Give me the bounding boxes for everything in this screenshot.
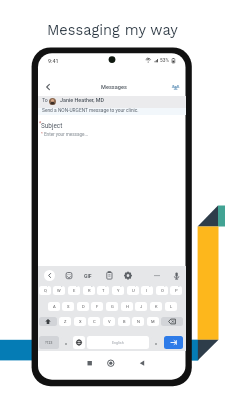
button[interactable]: Close keyboard toolbar: [44, 270, 55, 281]
button[interactable]: D: [77, 302, 89, 311]
staticText: E: [73, 288, 76, 293]
button[interactable]: 4: [83, 286, 95, 295]
staticText: D: [82, 304, 85, 309]
staticText: *: [39, 120, 42, 126]
staticText: 4: [91, 286, 93, 288]
staticText: 9: [164, 286, 166, 288]
staticText: F: [96, 304, 99, 309]
button[interactable]: GIF: [83, 271, 93, 281]
button[interactable]: L: [165, 302, 177, 311]
button[interactable]: Settings: [123, 271, 133, 281]
button[interactable]: J: [135, 302, 147, 311]
staticText: A: [53, 304, 56, 309]
button[interactable]: Voice input: [172, 271, 182, 281]
button[interactable]: H: [121, 302, 133, 311]
staticText: Enter your message...: [44, 132, 89, 137]
staticText: W: [57, 288, 61, 293]
staticText: 1: [47, 286, 49, 288]
button[interactable]: A: [48, 302, 60, 311]
staticText: 53%: [160, 58, 169, 64]
button[interactable]: 8: [141, 286, 153, 295]
staticText: 6: [120, 286, 122, 288]
button[interactable]: backspace: [161, 317, 183, 326]
staticText: U: [132, 288, 135, 293]
staticText: L: [170, 304, 173, 309]
button[interactable]: Back: [136, 357, 148, 369]
button[interactable]: English: [87, 336, 149, 349]
button[interactable]: num: [39, 336, 59, 349]
button[interactable]: B: [118, 317, 130, 326]
staticText: C: [93, 319, 96, 324]
staticText: Z: [64, 319, 67, 324]
staticText: R: [88, 288, 91, 293]
button[interactable]: More: [152, 271, 162, 281]
staticText: *: [41, 131, 43, 136]
staticText: G: [111, 304, 114, 309]
button[interactable]: G: [106, 302, 118, 311]
button[interactable]: Send: [164, 336, 183, 349]
button[interactable]: M: [147, 317, 159, 326]
button[interactable]: Recents: [84, 357, 96, 369]
staticText: X: [79, 319, 82, 324]
button[interactable]: dot: [151, 336, 161, 349]
button[interactable]: X: [74, 317, 86, 326]
button[interactable]: 6: [112, 286, 124, 295]
button[interactable]: 5: [97, 286, 109, 295]
button[interactable]: V: [103, 317, 115, 326]
staticText: M: [151, 319, 155, 324]
staticText: 2: [61, 286, 63, 288]
staticText: Y: [117, 288, 120, 293]
button[interactable]: 9: [156, 286, 168, 295]
staticText: K: [155, 304, 158, 309]
button[interactable]: shift: [39, 317, 57, 326]
staticText: Send a NON-URGENT message to your clinic…: [42, 108, 139, 114]
button[interactable]: F: [91, 302, 103, 311]
button[interactable]: [38, 96, 186, 108]
staticText: H: [126, 304, 129, 309]
staticText: Subject: [41, 122, 63, 130]
button[interactable]: Z: [59, 317, 71, 326]
button[interactable]: Clipboard: [104, 271, 114, 281]
staticText: S: [67, 304, 70, 309]
button[interactable]: Back: [39, 80, 57, 94]
staticText: N: [137, 319, 140, 324]
button[interactable]: Contacts: [169, 80, 183, 94]
button[interactable]: Home: [105, 357, 117, 369]
button[interactable]: 2: [53, 286, 65, 295]
staticText: 3: [76, 286, 78, 288]
staticText: 8: [149, 286, 151, 288]
staticText: 9:41: [48, 58, 59, 64]
staticText: Messaging my way: [47, 21, 178, 38]
staticText: Messages: [101, 84, 127, 91]
staticText: P: [175, 288, 178, 293]
staticText: English: [112, 341, 124, 345]
button[interactable]: [73, 336, 85, 349]
button[interactable]: comma: [61, 336, 71, 349]
staticText: Q: [44, 288, 47, 293]
staticText: B: [123, 319, 126, 324]
staticText: I: [146, 288, 148, 293]
button[interactable]: 7: [127, 286, 139, 295]
staticText: To: [42, 97, 48, 103]
button[interactable]: 0: [170, 286, 182, 295]
button[interactable]: K: [150, 302, 162, 311]
staticText: Janie Heather, MD: [60, 97, 105, 103]
button[interactable]: Emoji: [64, 271, 74, 281]
staticText: 5: [105, 286, 107, 288]
button[interactable]: N: [132, 317, 144, 326]
button[interactable]: C: [88, 317, 100, 326]
staticText: 0: [178, 286, 180, 288]
staticText: T: [102, 288, 105, 293]
staticText: ?123: [45, 341, 53, 345]
staticText: 7: [135, 286, 137, 288]
staticText: O: [161, 288, 164, 293]
staticText: V: [108, 319, 111, 324]
button[interactable]: S: [62, 302, 74, 311]
staticText: GIF: [84, 273, 92, 279]
staticText: J: [140, 304, 143, 309]
button[interactable]: 3: [68, 286, 80, 295]
button[interactable]: 1: [39, 286, 51, 295]
